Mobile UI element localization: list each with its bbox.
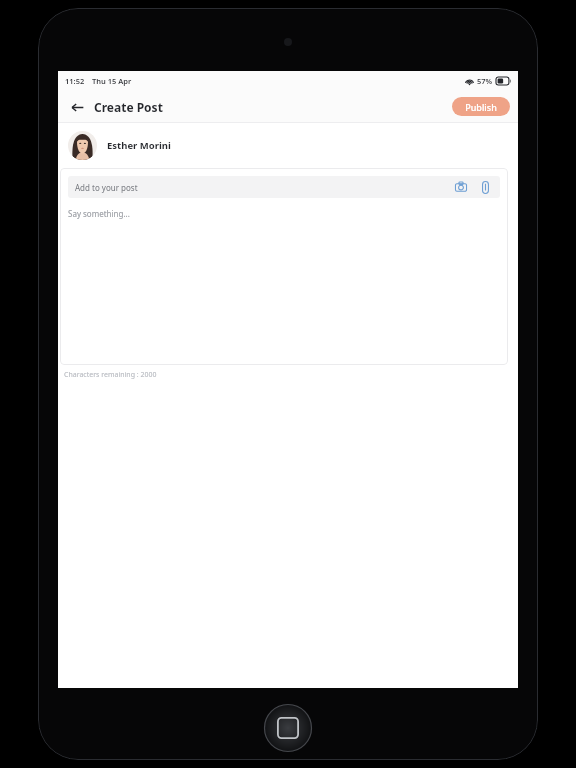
button[interactable]: Add photo	[453, 179, 469, 195]
staticText: Create Post	[94, 99, 163, 115]
button[interactable]: Back	[66, 96, 88, 118]
button[interactable]: Attach file	[477, 179, 493, 195]
staticText: Characters remaining : 2000	[64, 370, 157, 380]
button[interactable]: Add to your post	[68, 176, 500, 198]
button[interactable]: Say something...	[68, 208, 500, 357]
staticText: 11:52	[65, 76, 85, 86]
staticText: Add to your post	[75, 182, 138, 193]
button[interactable]: Esther Morini	[58, 123, 518, 168]
staticText: 57%	[477, 76, 493, 86]
button[interactable]: Publish	[452, 97, 510, 116]
staticText: Esther Morini	[107, 139, 171, 152]
staticText: Thu 15 Apr	[92, 76, 132, 86]
staticText: Publish	[465, 101, 497, 113]
staticText: Say something...	[68, 208, 130, 219]
